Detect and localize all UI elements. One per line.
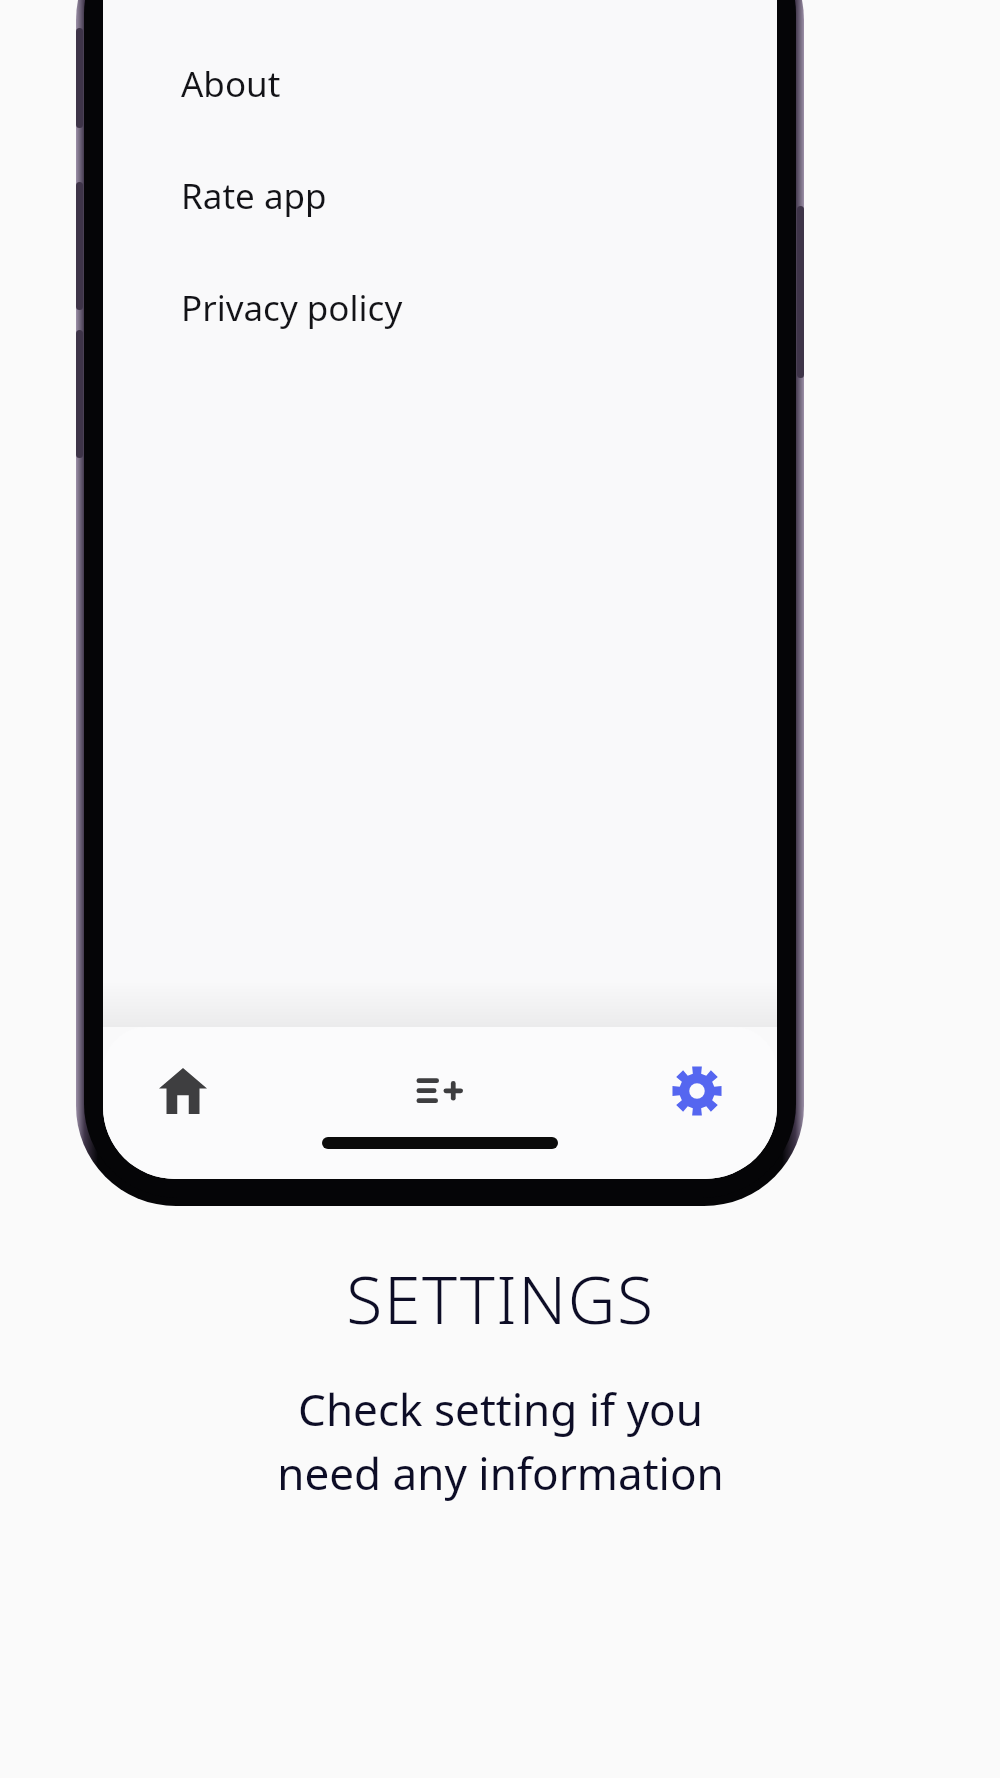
button[interactable]: Settings [647,1041,747,1141]
staticText: Check setting if you need any informatio… [277,1379,724,1503]
staticText: Privacy policy [181,284,403,332]
button[interactable]: Add list [390,1041,490,1141]
button[interactable]: About [103,28,777,140]
staticText: Rate app [181,172,327,220]
staticText: About [181,60,281,108]
button[interactable]: Home [133,1041,233,1141]
button[interactable]: Rate app [103,140,777,252]
button[interactable]: Privacy policy [103,252,777,364]
staticText: SETTINGS [346,1253,655,1343]
